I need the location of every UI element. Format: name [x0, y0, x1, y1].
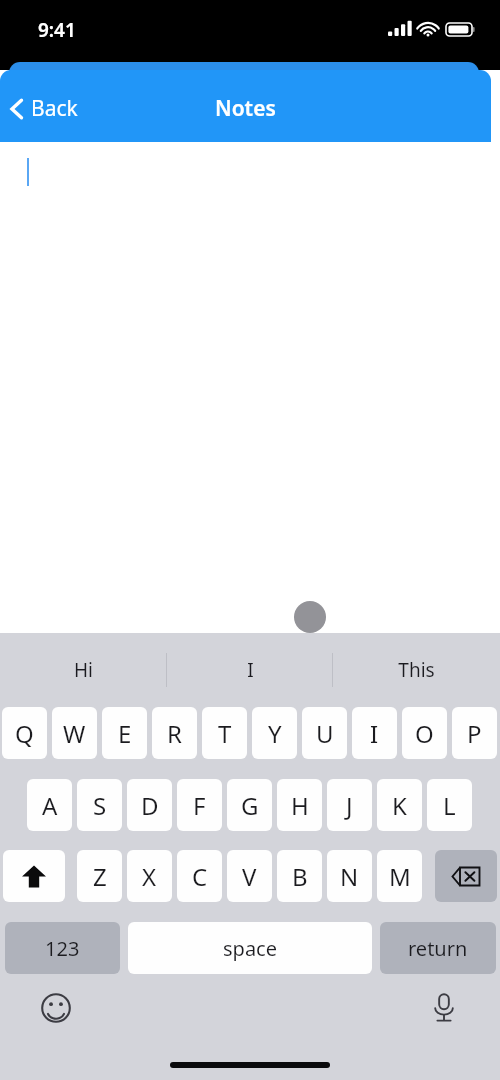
button[interactable]: X	[127, 850, 172, 902]
button[interactable]: C	[177, 850, 222, 902]
staticText: V	[242, 860, 257, 893]
staticText: Notes	[215, 94, 276, 123]
button[interactable]	[0, 142, 500, 633]
button[interactable]: Hi	[0, 633, 166, 707]
button[interactable]: H	[277, 779, 322, 831]
staticText: space	[223, 935, 277, 962]
staticText: P	[467, 717, 482, 750]
staticText: I	[370, 717, 379, 750]
staticText: T	[218, 717, 232, 750]
staticText: F	[193, 789, 206, 822]
button[interactable]: K	[377, 779, 422, 831]
staticText: Q	[15, 717, 34, 750]
button[interactable]: G	[227, 779, 272, 831]
staticText: B	[292, 860, 308, 893]
button[interactable]: T	[202, 707, 247, 759]
button[interactable]: Shift	[3, 850, 65, 902]
button[interactable]: B	[277, 850, 322, 902]
button[interactable]: space	[128, 922, 372, 974]
button[interactable]: N	[327, 850, 372, 902]
button[interactable]: Delete	[435, 850, 497, 902]
staticText: I	[247, 657, 254, 683]
button[interactable]: Dictate	[424, 988, 464, 1028]
button[interactable]: 123	[5, 922, 120, 974]
staticText: This	[398, 657, 435, 683]
staticText: K	[392, 789, 407, 822]
staticText: W	[63, 717, 86, 750]
staticText: U	[316, 717, 334, 750]
staticText: E	[118, 717, 132, 750]
button[interactable]: D	[127, 779, 172, 831]
staticText: O	[415, 717, 434, 750]
button[interactable]: R	[152, 707, 197, 759]
button[interactable]: I	[352, 707, 397, 759]
staticText: G	[241, 789, 259, 822]
button[interactable]: J	[327, 779, 372, 831]
staticText: X	[142, 860, 157, 893]
staticText: Y	[268, 717, 282, 750]
button[interactable]: Y	[252, 707, 297, 759]
button[interactable]: I	[167, 633, 333, 707]
button[interactable]: V	[227, 850, 272, 902]
staticText: Z	[93, 860, 107, 893]
button[interactable]: Back	[0, 88, 90, 129]
staticText: Hi	[74, 657, 93, 683]
staticText: A	[42, 789, 58, 822]
button[interactable]: E	[102, 707, 147, 759]
button[interactable]: This	[333, 633, 499, 707]
button[interactable]: F	[177, 779, 222, 831]
staticText: M	[389, 860, 411, 893]
staticText: J	[346, 789, 353, 822]
button[interactable]: Emoji	[36, 988, 76, 1028]
staticText: R	[167, 717, 182, 750]
staticText: 123	[45, 935, 80, 962]
staticText: return	[408, 935, 468, 962]
button[interactable]: U	[302, 707, 347, 759]
staticText: N	[340, 860, 359, 893]
button[interactable]: A	[27, 779, 72, 831]
button[interactable]: O	[402, 707, 447, 759]
button[interactable]: return	[380, 922, 496, 974]
button[interactable]: L	[427, 779, 472, 831]
staticText: D	[141, 789, 159, 822]
staticText: C	[192, 860, 208, 893]
button[interactable]: M	[377, 850, 422, 902]
button[interactable]: P	[452, 707, 497, 759]
staticText: L	[443, 789, 456, 822]
staticText: Back	[31, 94, 78, 123]
button[interactable]: Z	[77, 850, 122, 902]
button[interactable]: Q	[2, 707, 47, 759]
staticText: H	[291, 789, 309, 822]
staticText: 9:41	[38, 17, 76, 43]
staticText: S	[93, 789, 107, 822]
button[interactable]: S	[77, 779, 122, 831]
button[interactable]: W	[52, 707, 97, 759]
